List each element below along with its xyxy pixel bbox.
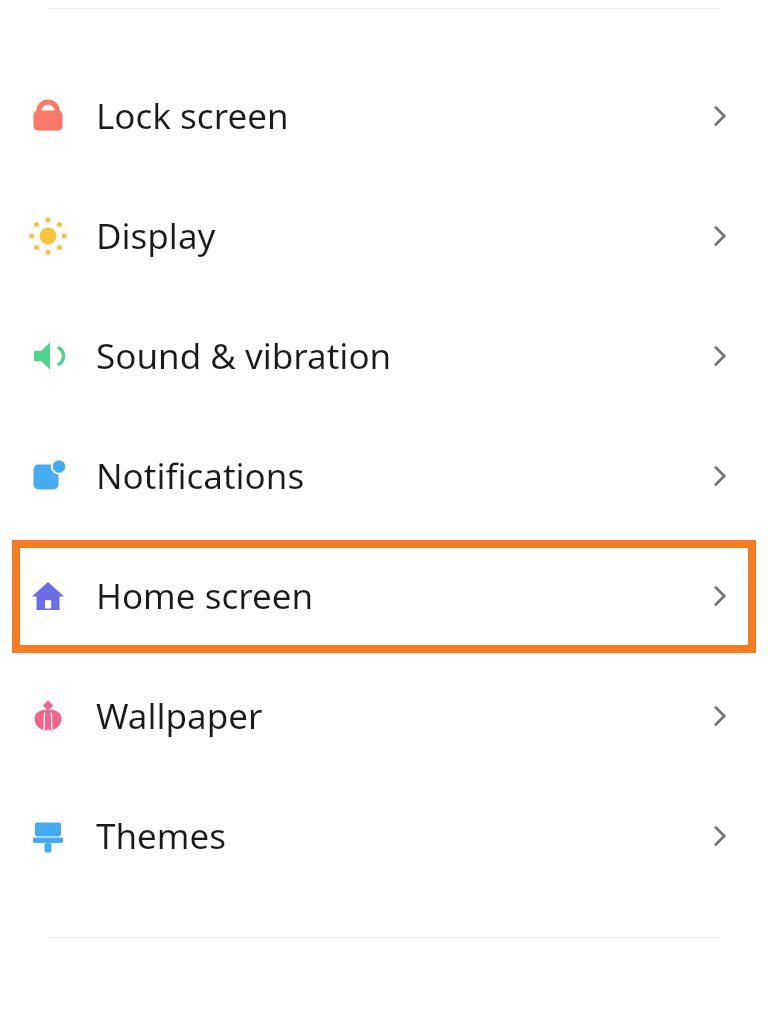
staticText: Notifications (96, 452, 672, 500)
button[interactable]: Notifications (0, 416, 768, 536)
button[interactable]: Wallpaper (0, 656, 768, 776)
other: Home screen highlighted (16, 544, 752, 649)
staticText: Themes (96, 812, 672, 860)
button[interactable]: Display (0, 176, 768, 296)
staticText: Display (96, 212, 672, 260)
staticText: Sound & vibration (96, 332, 672, 380)
button[interactable]: Themes (0, 776, 768, 896)
button[interactable]: Home screen (0, 536, 768, 656)
button[interactable]: Lock screen (0, 56, 768, 176)
staticText: Home screen (96, 572, 672, 620)
staticText: Lock screen (96, 92, 672, 140)
staticText: Wallpaper (96, 692, 672, 740)
button[interactable]: Sound & vibration (0, 296, 768, 416)
